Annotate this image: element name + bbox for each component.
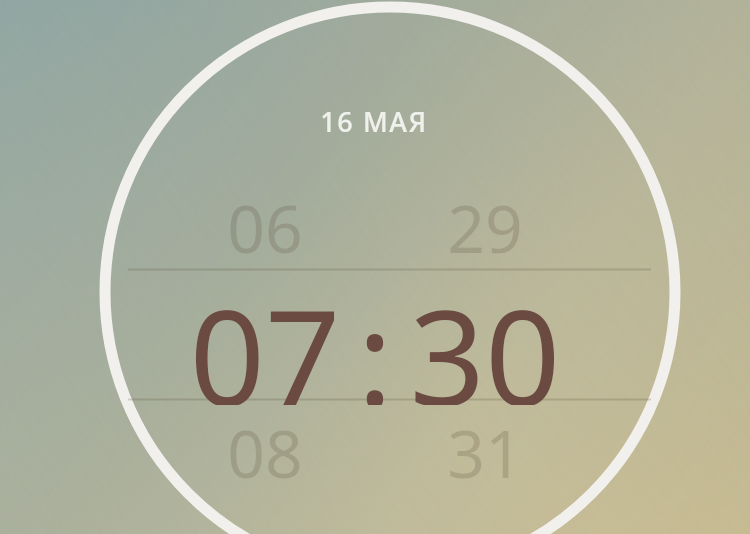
staticText: 07	[189, 265, 341, 405]
button[interactable]: 29	[401, 182, 569, 262]
button[interactable]: 07	[181, 265, 349, 405]
staticText: 08	[227, 407, 303, 487]
staticText: 06	[227, 182, 303, 262]
staticText: :	[357, 265, 393, 405]
button[interactable]: 31	[401, 407, 569, 487]
staticText: 31	[447, 407, 523, 487]
button[interactable]: 16 МАЯ	[0, 103, 750, 140]
button[interactable]: 06	[181, 182, 349, 262]
button[interactable]: 08	[181, 407, 349, 487]
staticText: 30	[409, 265, 561, 405]
button[interactable]: 30	[401, 265, 569, 405]
staticText: 29	[447, 182, 523, 262]
staticText: 16 МАЯ	[320, 103, 428, 140]
